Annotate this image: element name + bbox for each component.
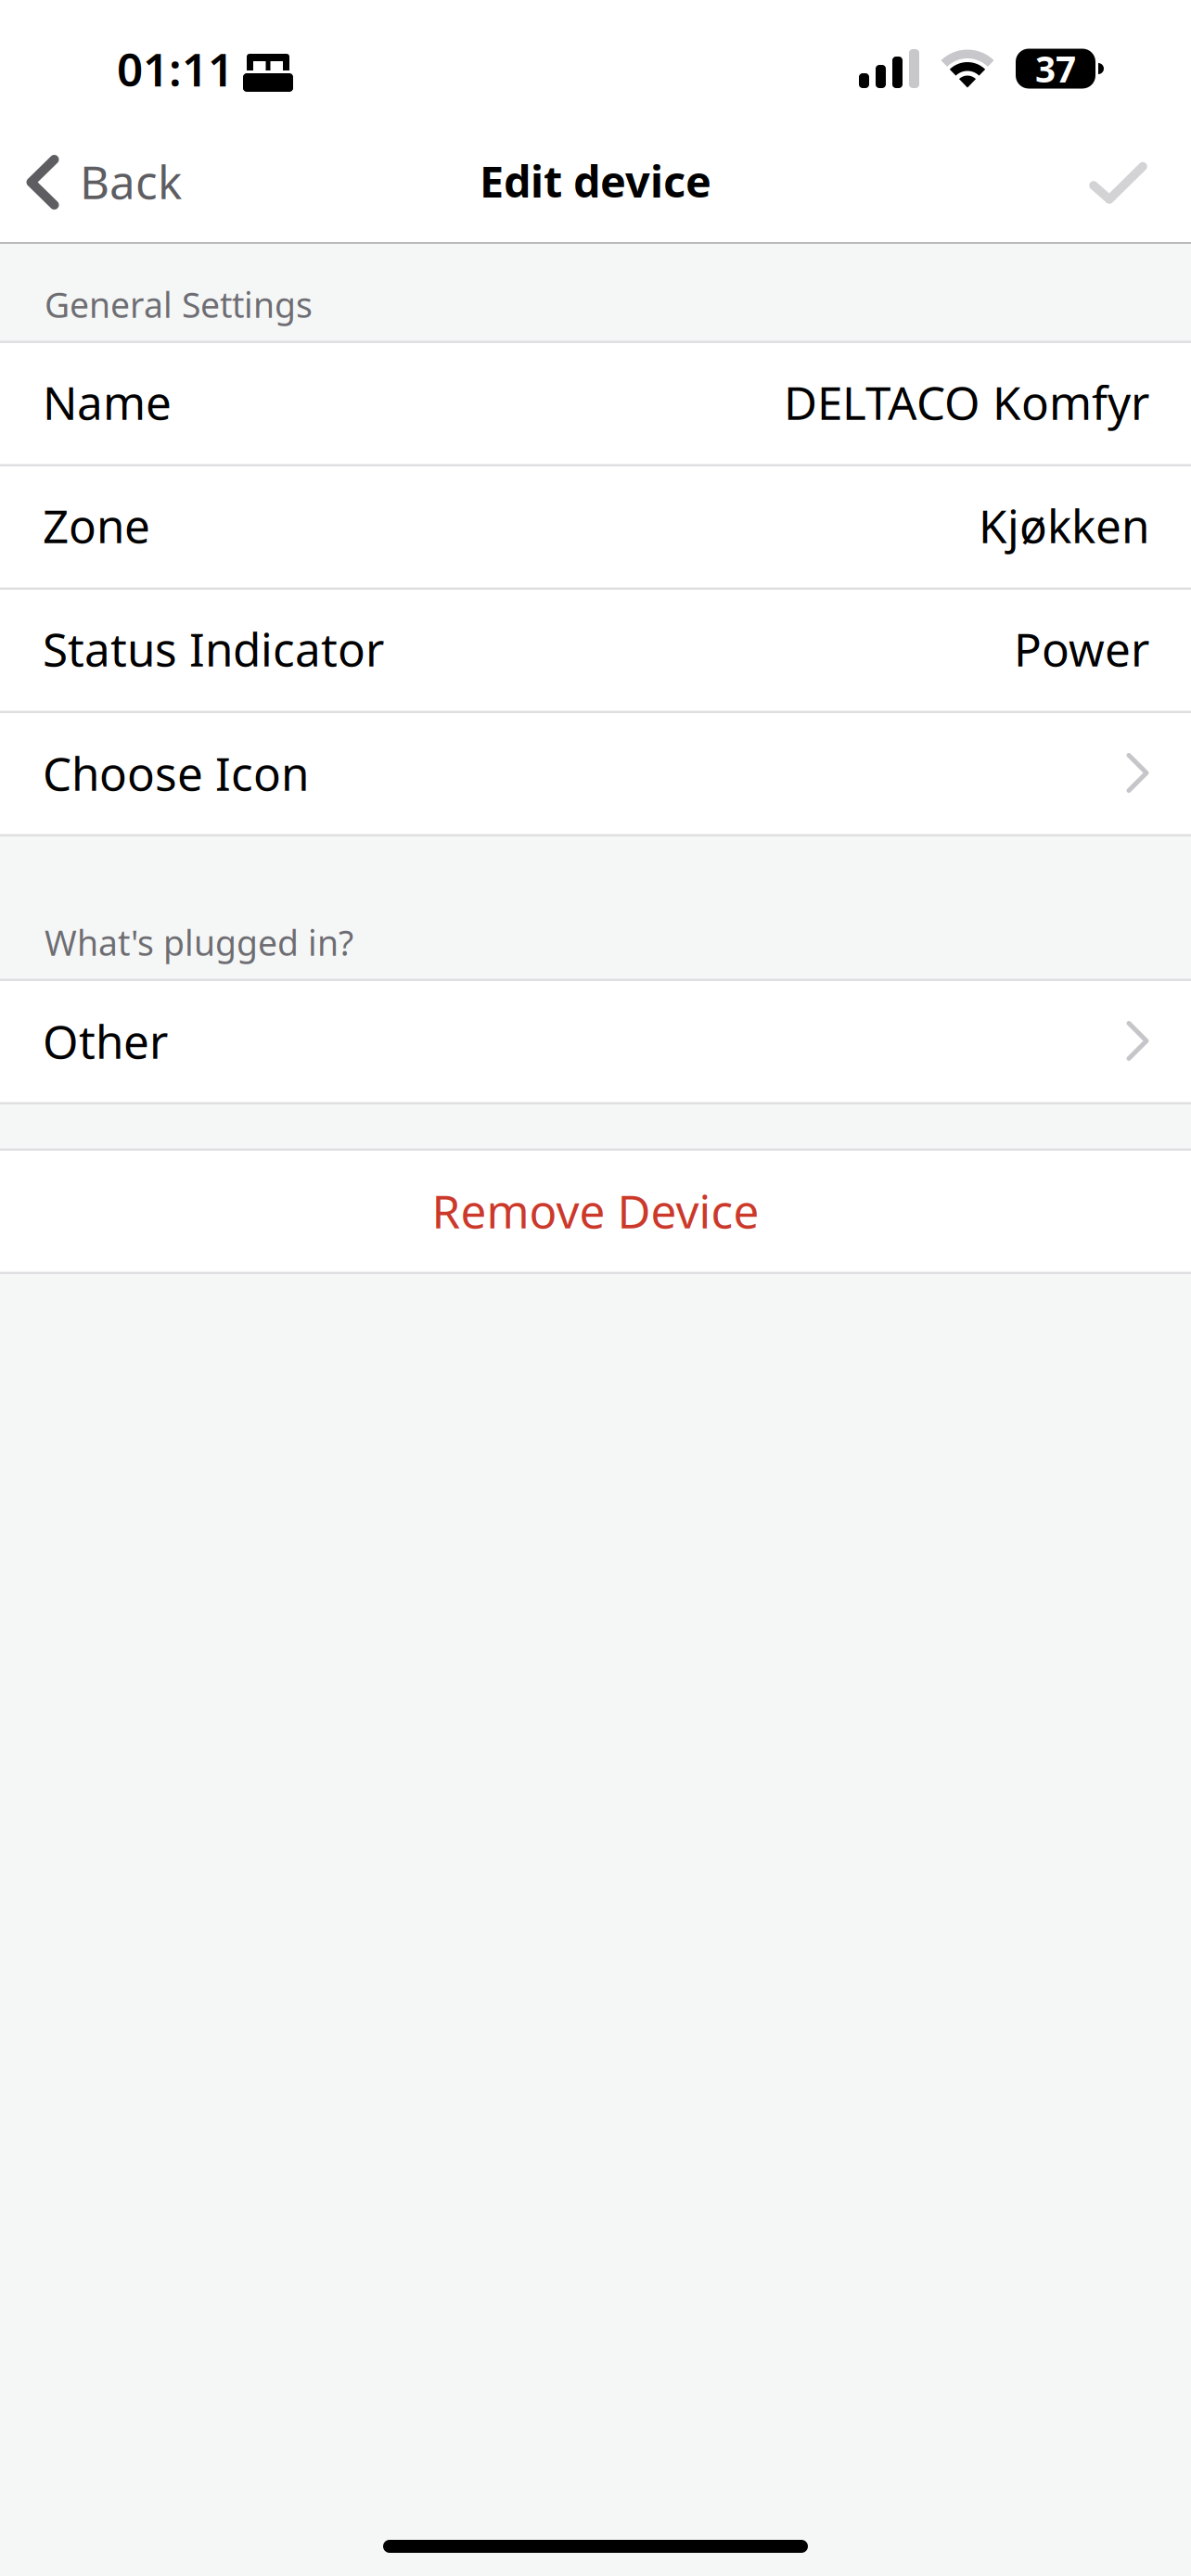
staticText: DELTACO Komfyr: [784, 372, 1149, 432]
staticText: What's plugged in?: [45, 919, 353, 965]
staticText: Name: [43, 372, 172, 432]
button[interactable]: Save: [1052, 150, 1191, 232]
staticText: 37: [1035, 45, 1076, 92]
button[interactable]: Back: [0, 137, 278, 227]
staticText: Power: [1014, 618, 1149, 679]
staticText: Zone: [43, 495, 150, 556]
staticText: Choose Icon: [43, 742, 309, 803]
staticText: General Settings: [45, 281, 313, 327]
button[interactable]: Zone: [0, 466, 1191, 590]
button[interactable]: Other: [0, 981, 1191, 1104]
staticText: Remove Device: [432, 1180, 759, 1241]
staticText: Kjøkken: [979, 495, 1149, 556]
staticText: Back: [80, 151, 182, 212]
staticText: Status Indicator: [43, 618, 384, 679]
button[interactable]: Choose Icon: [0, 713, 1191, 836]
button[interactable]: Remove Device: [0, 1151, 1191, 1274]
staticText: Edit device: [480, 152, 711, 210]
staticText: Other: [43, 1010, 168, 1071]
button[interactable]: Status Indicator: [0, 590, 1191, 713]
button[interactable]: Name: [0, 343, 1191, 466]
staticText: 01:11: [117, 38, 234, 99]
